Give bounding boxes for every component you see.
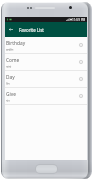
- button[interactable]: Give: [5, 88, 87, 104]
- button[interactable]: Play pronunciation: [75, 54, 87, 70]
- button[interactable]: Play pronunciation: [75, 37, 87, 53]
- staticText: দাও: [6, 99, 10, 102]
- staticText: 11:59 PM: [72, 18, 86, 22]
- button[interactable]: Play pronunciation: [75, 71, 87, 87]
- staticText: Birthday: [6, 40, 26, 47]
- button[interactable]: Day: [5, 71, 87, 87]
- staticText: দিন: [6, 82, 10, 85]
- staticText: Give: [6, 91, 16, 98]
- staticText: আসা: [6, 65, 12, 68]
- button[interactable]: Back: [5, 22, 16, 37]
- button[interactable]: Come: [5, 54, 87, 70]
- staticText: জন্মদিন: [6, 48, 14, 51]
- button[interactable]: Birthday: [5, 37, 87, 53]
- staticText: Favorite List: [19, 27, 44, 33]
- staticText: Day: [6, 74, 15, 81]
- button[interactable]: Play pronunciation: [75, 88, 87, 104]
- staticText: Come: [6, 57, 20, 64]
